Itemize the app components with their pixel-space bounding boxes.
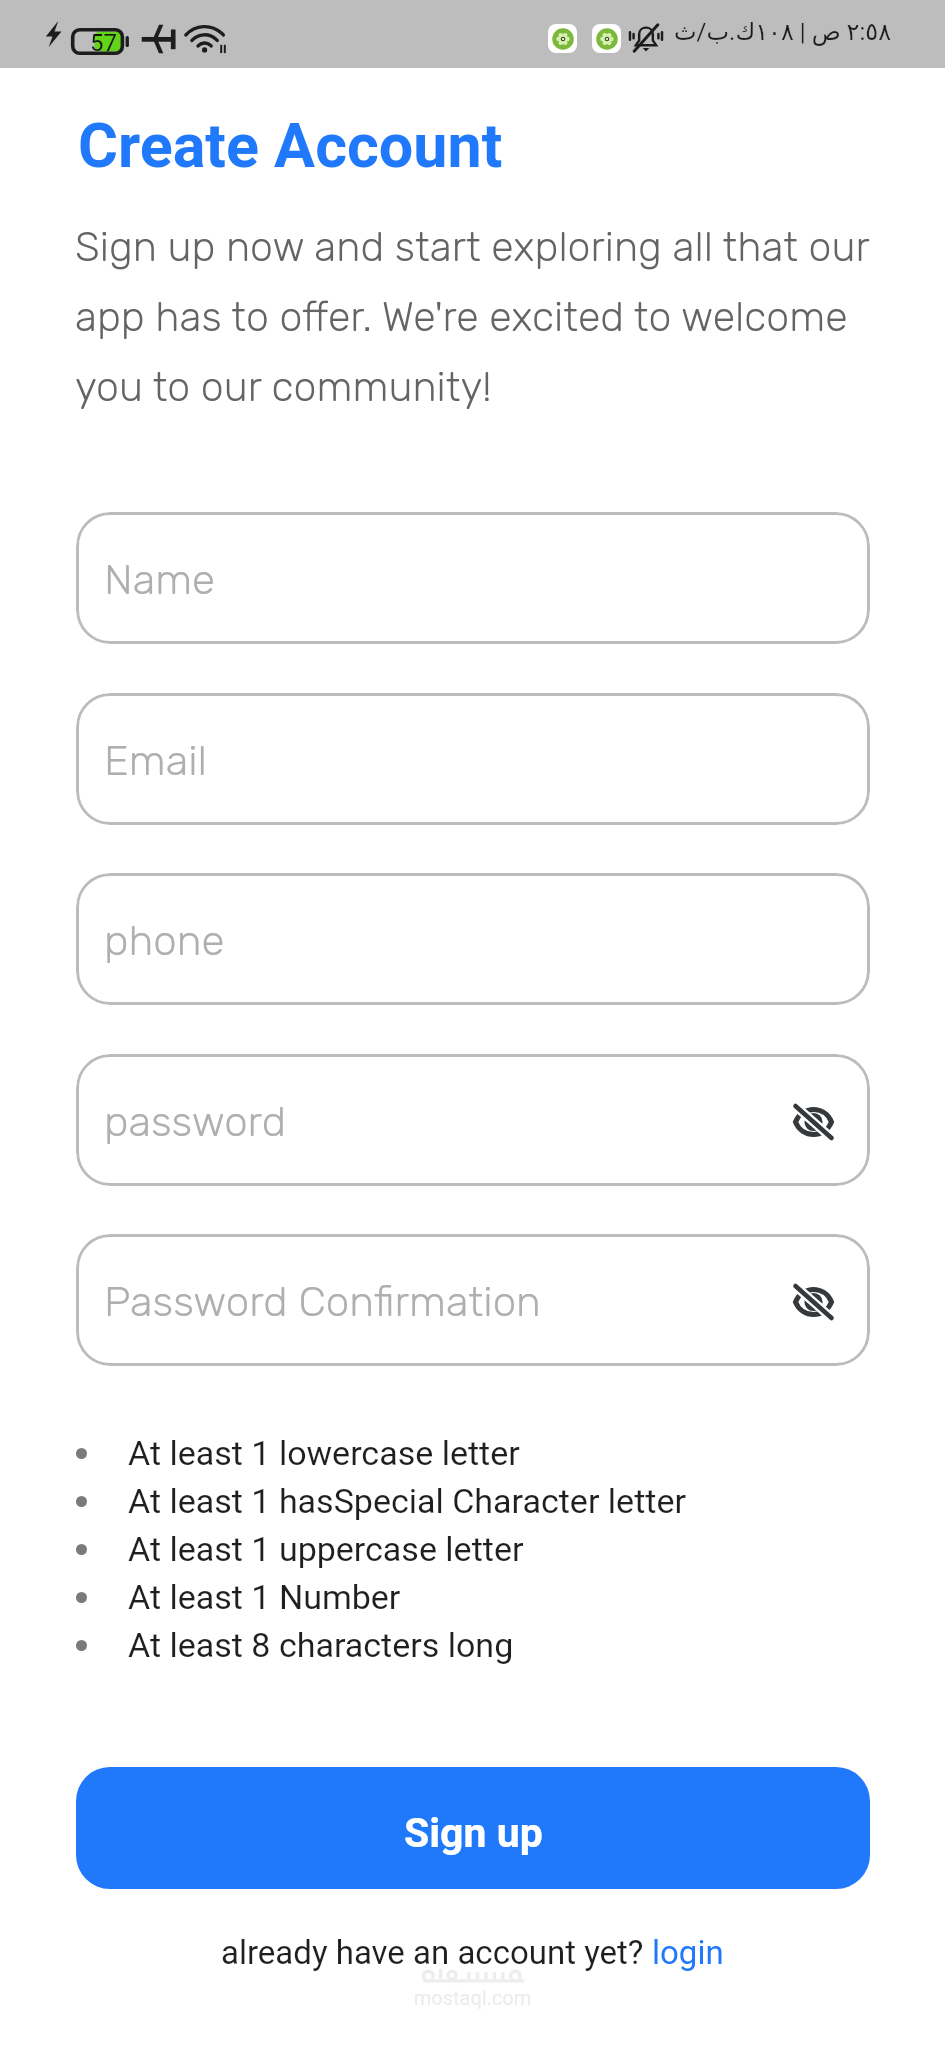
button[interactable]: Sign up (76, 1767, 870, 1889)
staticText: Create Account (78, 110, 503, 181)
staticText: At least 1 hasSpecial Character letter (128, 1481, 686, 1521)
button[interactable]: password (76, 1054, 870, 1186)
staticText: Sign up (404, 1809, 543, 1857)
staticText: password (104, 1097, 287, 1147)
button[interactable]: Email (76, 693, 870, 825)
button[interactable]: Toggle password visibility (771, 1080, 855, 1164)
staticText: phone (104, 916, 225, 966)
staticText: At least 1 Number (128, 1577, 401, 1617)
staticText: At least 1 lowercase letter (128, 1433, 520, 1473)
button[interactable]: Password Confirmation (76, 1234, 870, 1366)
staticText: 57 (90, 29, 117, 56)
button[interactable]: login (652, 1933, 724, 1972)
staticText: At least 8 characters long (128, 1625, 514, 1665)
staticText: Email (104, 736, 208, 786)
staticText: Name (104, 555, 216, 605)
staticText: Password Confirmation (104, 1277, 541, 1327)
staticText: already have an account yet? (221, 1933, 652, 1972)
staticText: Sign up now and start exploring all that… (75, 223, 945, 411)
button[interactable]: phone (76, 873, 870, 1005)
staticText: ٢:٥٨ ص | ١٠٨ك.ب/ث (674, 18, 892, 46)
button[interactable]: Toggle password visibility (771, 1260, 855, 1344)
staticText: At least 1 uppercase letter (128, 1529, 524, 1569)
staticText: login (652, 1933, 724, 1972)
button[interactable]: Name (76, 512, 870, 644)
